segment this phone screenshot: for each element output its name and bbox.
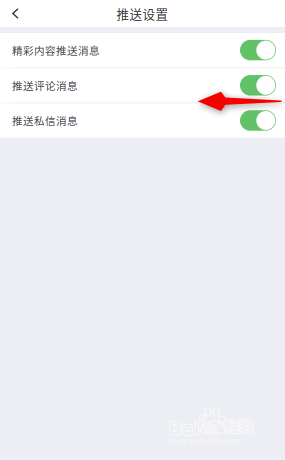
staticText: 经验	[226, 415, 254, 436]
staticText: Bai	[169, 418, 200, 438]
staticText: du	[205, 422, 219, 434]
staticText: Bai	[168, 420, 199, 440]
staticText: du	[204, 421, 218, 433]
staticText: 精彩内容推送消息	[12, 42, 100, 58]
staticText: 推送私信消息	[12, 113, 78, 128]
staticText: 经验	[225, 416, 253, 436]
staticText: du	[204, 423, 218, 435]
staticText: du	[204, 422, 218, 434]
staticText: Bai	[168, 418, 199, 438]
button[interactable]: Back	[0, 0, 30, 27]
staticText: du	[205, 423, 219, 435]
staticText: du	[203, 423, 217, 435]
button[interactable]: 推送私信消息	[0, 103, 285, 138]
staticText: 经验	[226, 416, 254, 436]
staticText: Bai	[168, 420, 199, 440]
staticText: 经验	[225, 414, 253, 435]
button[interactable]: 推送评论消息	[0, 68, 285, 102]
staticText: 经验	[226, 414, 254, 435]
staticText: 经验	[225, 415, 253, 436]
staticText: Bai	[169, 419, 200, 439]
staticText: 推送评论消息	[12, 78, 78, 93]
staticText: 经验	[225, 415, 253, 436]
staticText: 推送设置	[116, 4, 168, 22]
staticText: Bai	[168, 419, 199, 439]
staticText: du	[203, 422, 217, 434]
staticText: Bai	[168, 419, 199, 439]
staticText: Bai	[168, 418, 199, 438]
staticText: 经验	[225, 414, 253, 435]
staticText: Bai	[169, 420, 200, 440]
staticText: du	[203, 421, 217, 433]
button[interactable]: 精彩内容推送消息	[0, 33, 285, 67]
staticText: du	[205, 421, 219, 433]
staticText: 经验	[225, 416, 253, 436]
